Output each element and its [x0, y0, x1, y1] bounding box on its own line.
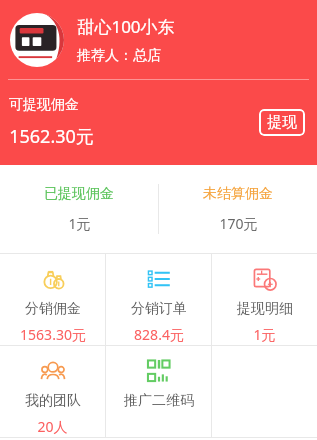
button[interactable]: 分销订单 — [106, 254, 211, 345]
staticText: 已提现佣金 — [44, 185, 114, 203]
staticText: 1元 — [253, 325, 276, 344]
staticText: 170元 — [219, 214, 258, 233]
staticText: 1562.30元 — [9, 124, 94, 149]
button[interactable]: 分销佣金 — [0, 254, 105, 345]
button[interactable]: 我的团队 — [0, 346, 105, 437]
button[interactable]: Profile avatar — [10, 13, 64, 67]
staticText: 分销佣金 — [25, 300, 81, 318]
staticText: 1563.30元 — [20, 325, 86, 344]
staticText: 可提现佣金 — [9, 96, 79, 114]
button[interactable]: 提现 — [259, 109, 305, 136]
button[interactable]: 已提现佣金 — [0, 165, 158, 253]
staticText: 1元 — [68, 214, 91, 233]
staticText: 我的团队 — [25, 392, 81, 410]
staticText: 推广二维码 — [124, 392, 194, 410]
button[interactable]: 推广二维码 — [106, 346, 211, 437]
button[interactable]: 未结算佣金 — [159, 165, 317, 253]
staticText: 提现明细 — [237, 300, 293, 318]
staticText: 甜心100小东 — [77, 15, 175, 38]
button[interactable]: 提现明细 — [212, 254, 317, 345]
staticText: 提现 — [267, 113, 297, 132]
staticText: 20人 — [37, 417, 68, 436]
staticText: 推荐人：总店 — [77, 47, 161, 65]
staticText: 未结算佣金 — [203, 185, 273, 203]
staticText: 828.4元 — [134, 325, 184, 344]
staticText: 分销订单 — [131, 300, 187, 318]
